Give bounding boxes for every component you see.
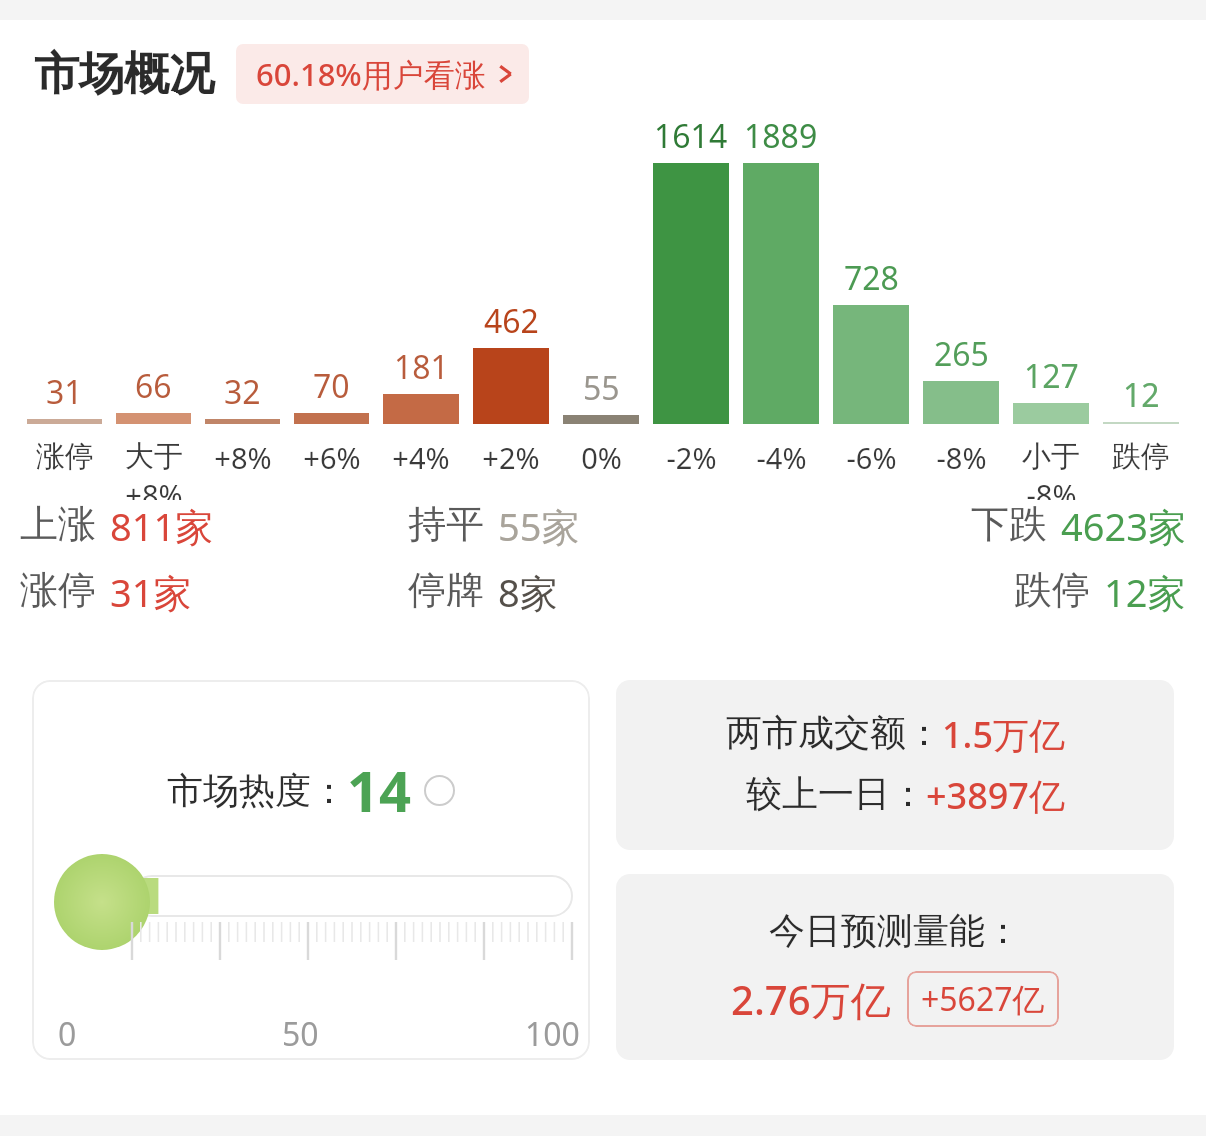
staticText: 181 — [394, 345, 449, 389]
staticText: 12 — [1123, 373, 1160, 417]
staticText: 70 — [313, 364, 350, 408]
staticText: +4% — [392, 438, 450, 477]
button[interactable]: 462 — [466, 114, 556, 500]
button[interactable]: 两市成交额： — [616, 680, 1174, 850]
staticText: +2% — [482, 438, 540, 477]
staticText: 100 — [525, 1012, 580, 1056]
staticText: 811家 — [110, 500, 214, 552]
staticText: 31家 — [110, 566, 192, 618]
staticText: 462 — [484, 299, 539, 343]
staticText: +3897亿 — [926, 771, 1065, 820]
staticText: 市场概况 — [34, 46, 214, 103]
staticText: 跌停 — [1014, 566, 1090, 614]
staticText: 今日预测量能： — [769, 908, 1021, 953]
staticText: -2% — [666, 438, 717, 477]
staticText: 265 — [934, 332, 989, 376]
button[interactable]: 127 — [1006, 114, 1096, 500]
button[interactable]: 12 — [1096, 114, 1186, 500]
staticText: 4623家 — [1061, 500, 1186, 552]
staticText: -8% — [936, 438, 987, 477]
staticText: 14 — [347, 752, 412, 828]
staticText: +8% — [125, 475, 183, 500]
staticText: -8% — [1026, 475, 1077, 500]
button[interactable]: 66 — [109, 114, 198, 500]
staticText: 0% — [581, 438, 622, 477]
button[interactable]: 55 — [556, 114, 646, 500]
staticText: +6% — [303, 438, 361, 477]
staticText: 涨停 — [36, 438, 94, 475]
staticText: 66 — [135, 364, 172, 408]
staticText: 0 — [58, 1012, 77, 1056]
staticText: 市场热度： — [167, 768, 347, 813]
staticText: -6% — [846, 438, 897, 477]
button[interactable]: 728 — [826, 114, 916, 500]
staticText: 下跌 — [971, 500, 1047, 548]
staticText: 50 — [282, 1012, 319, 1056]
staticText: 两市成交额： — [726, 710, 942, 755]
staticText: 32 — [224, 370, 261, 414]
button[interactable]: 60.18%用户看涨 — [236, 44, 529, 104]
button[interactable]: 265 — [916, 114, 1006, 500]
staticText: 上涨 — [20, 500, 96, 548]
button[interactable]: 31 — [20, 114, 109, 500]
staticText: 728 — [844, 256, 899, 300]
staticText: 较上一日： — [746, 771, 926, 816]
staticText: 大于 — [125, 438, 183, 475]
staticText: 55家 — [498, 500, 580, 552]
staticText: 持平 — [408, 500, 484, 548]
button[interactable]: 181 — [376, 114, 466, 500]
staticText: -4% — [756, 438, 807, 477]
staticText: 60.18%用户看涨 — [256, 53, 486, 95]
staticText: 1889 — [744, 114, 818, 158]
staticText: 55 — [583, 366, 620, 410]
button[interactable]: 70 — [287, 114, 376, 500]
staticText: 跌停 — [1112, 438, 1170, 475]
other: 帮助 — [424, 775, 455, 806]
staticText: 1614 — [654, 114, 728, 158]
button[interactable]: 今日预测量能： — [616, 874, 1174, 1060]
staticText: 2.76万亿 — [731, 972, 891, 1027]
button[interactable]: 市场热度： — [32, 680, 590, 1060]
button[interactable]: 32 — [198, 114, 287, 500]
staticText: 12家 — [1104, 566, 1186, 618]
staticText: 127 — [1024, 354, 1079, 398]
staticText: +8% — [214, 438, 272, 477]
staticText: 小于 — [1022, 438, 1080, 475]
button[interactable]: 1614 — [646, 114, 736, 500]
staticText: 1.5万亿 — [942, 710, 1065, 759]
staticText: 停牌 — [408, 566, 484, 614]
staticText: 31 — [46, 370, 83, 414]
button[interactable]: 1889 — [736, 114, 826, 500]
staticText: +5627亿 — [921, 977, 1045, 1021]
staticText: 涨停 — [20, 566, 96, 614]
staticText: 8家 — [498, 566, 558, 618]
